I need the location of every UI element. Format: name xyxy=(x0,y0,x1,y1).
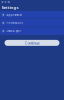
button[interactable]: Appearance xyxy=(0,11,64,19)
staticText: Data & Sync xyxy=(6,29,20,33)
staticText: Settings xyxy=(1,5,18,10)
button[interactable]: Data & Sync xyxy=(0,27,64,35)
button[interactable]: Continue xyxy=(4,40,59,46)
staticText: Continue xyxy=(24,40,39,45)
staticText: Appearance xyxy=(6,13,22,17)
button[interactable]: Permissions xyxy=(0,19,64,27)
staticText: Permissions xyxy=(6,21,22,25)
